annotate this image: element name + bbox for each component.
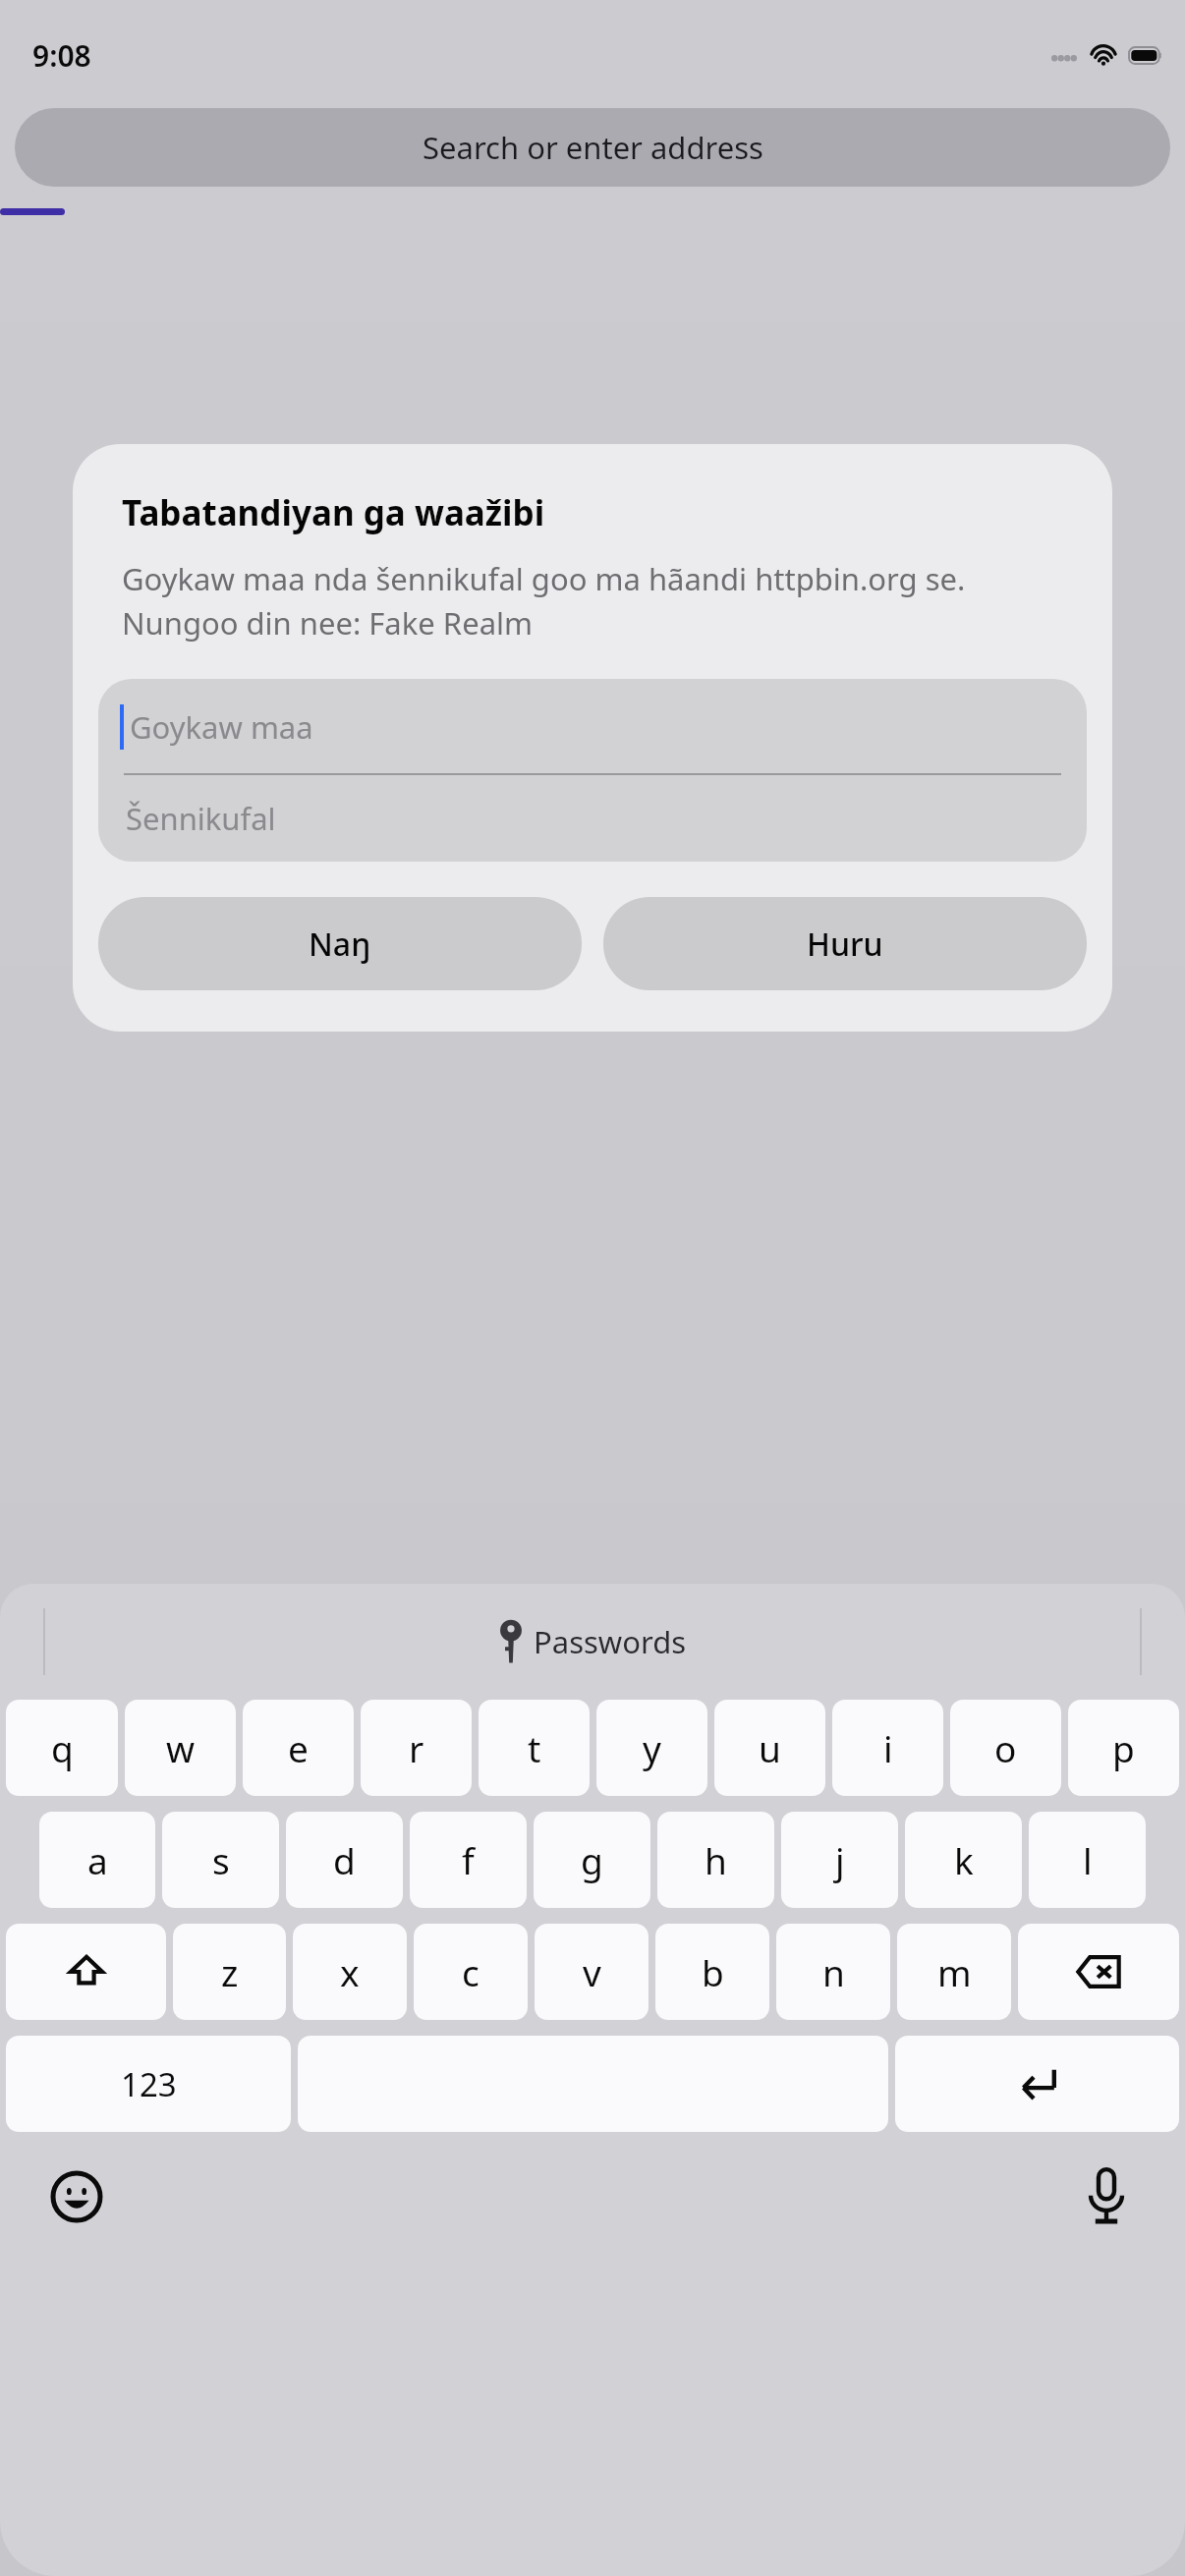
staticText: w bbox=[166, 1723, 196, 1772]
staticText: m bbox=[937, 1947, 972, 1996]
button[interactable]: b bbox=[655, 1924, 769, 2020]
staticText: Tabatandiyan ga waažibi bbox=[122, 489, 545, 536]
button[interactable]: Dictation bbox=[1069, 2159, 1144, 2234]
button[interactable] bbox=[194, 485, 325, 617]
button[interactable]: e bbox=[243, 1700, 354, 1796]
button[interactable]: l bbox=[1029, 1812, 1146, 1908]
button[interactable]: y bbox=[596, 1700, 707, 1796]
staticText: l bbox=[1083, 1835, 1093, 1884]
staticText: i bbox=[883, 1723, 893, 1772]
staticText: Goykaw maa nda šennikufal goo ma hãandi … bbox=[122, 558, 1063, 644]
button[interactable]: p bbox=[1068, 1700, 1179, 1796]
staticText: s bbox=[212, 1835, 230, 1884]
staticText: Search or enter address bbox=[423, 127, 763, 168]
button[interactable]: a bbox=[39, 1812, 155, 1908]
staticText: j bbox=[835, 1835, 845, 1884]
button[interactable]: g bbox=[534, 1812, 650, 1908]
staticText: 9:08 bbox=[32, 35, 91, 76]
button[interactable]: Shift bbox=[6, 1924, 166, 2020]
button[interactable]: o bbox=[950, 1700, 1061, 1796]
staticText: G bbox=[251, 625, 269, 659]
button[interactable]: Backspace bbox=[1018, 1924, 1179, 2020]
staticText: x bbox=[340, 1947, 360, 1996]
staticText: v bbox=[583, 1947, 601, 1996]
button[interactable]: s bbox=[162, 1812, 279, 1908]
staticText: Goykaw maa bbox=[130, 706, 313, 748]
button[interactable]: 123 bbox=[6, 2036, 291, 2132]
staticText: h bbox=[705, 1835, 727, 1884]
staticText: t bbox=[528, 1723, 541, 1772]
button[interactable] bbox=[527, 719, 658, 851]
staticText: 123 bbox=[121, 2062, 177, 2106]
staticText: a bbox=[87, 1835, 108, 1884]
staticText: Wi bbox=[245, 859, 275, 893]
button[interactable]: q bbox=[6, 1700, 118, 1796]
button[interactable]: h bbox=[657, 1812, 774, 1908]
staticText: o bbox=[994, 1723, 1017, 1772]
staticText: q bbox=[51, 1723, 74, 1772]
staticText: e bbox=[288, 1723, 309, 1772]
button[interactable]: m bbox=[897, 1924, 1011, 2020]
button[interactable]: z bbox=[173, 1924, 286, 2020]
staticText: f bbox=[462, 1835, 475, 1884]
staticText: Huru bbox=[807, 923, 883, 966]
button[interactable]: n bbox=[776, 1924, 890, 2020]
button[interactable]: f bbox=[410, 1812, 527, 1908]
button[interactable]: Goykaw maa bbox=[98, 679, 1087, 775]
staticText: Passwords bbox=[534, 1621, 687, 1662]
button[interactable]: Search or enter address bbox=[15, 108, 1170, 187]
button[interactable]: Passwords bbox=[498, 1620, 687, 1663]
button[interactable] bbox=[194, 719, 325, 851]
staticText: z bbox=[221, 1947, 239, 1996]
staticText: Šennikufal bbox=[126, 798, 276, 839]
button[interactable]: c bbox=[414, 1924, 528, 2020]
button[interactable]: Šennikufal bbox=[98, 775, 1087, 862]
button[interactable]: u bbox=[714, 1700, 825, 1796]
button[interactable]: i bbox=[832, 1700, 943, 1796]
staticText: b bbox=[702, 1947, 724, 1996]
button[interactable]: d bbox=[286, 1812, 403, 1908]
button[interactable]: v bbox=[535, 1924, 649, 2020]
button[interactable]: x bbox=[293, 1924, 407, 2020]
button[interactable]: w bbox=[125, 1700, 236, 1796]
staticText: y bbox=[643, 1723, 661, 1772]
button[interactable]: t bbox=[479, 1700, 590, 1796]
staticText: d bbox=[333, 1835, 356, 1884]
staticText: r bbox=[409, 1723, 424, 1772]
staticText: Naŋ bbox=[309, 923, 371, 966]
staticText: u bbox=[759, 1723, 781, 1772]
button[interactable] bbox=[860, 719, 991, 851]
button[interactable]: Huru bbox=[603, 897, 1087, 990]
button[interactable]: Emoji bbox=[39, 2159, 114, 2234]
button[interactable]: j bbox=[781, 1812, 898, 1908]
staticText: c bbox=[462, 1947, 480, 1996]
button[interactable]: k bbox=[905, 1812, 1022, 1908]
button[interactable]: r bbox=[361, 1700, 472, 1796]
staticText: g bbox=[581, 1835, 603, 1884]
button[interactable] bbox=[860, 485, 991, 617]
staticText: p bbox=[1112, 1723, 1135, 1772]
button[interactable]: Naŋ bbox=[98, 897, 582, 990]
button[interactable]: Return bbox=[895, 2036, 1179, 2132]
staticText: k bbox=[954, 1835, 974, 1884]
button[interactable] bbox=[527, 485, 658, 617]
staticText: n bbox=[822, 1947, 845, 1996]
